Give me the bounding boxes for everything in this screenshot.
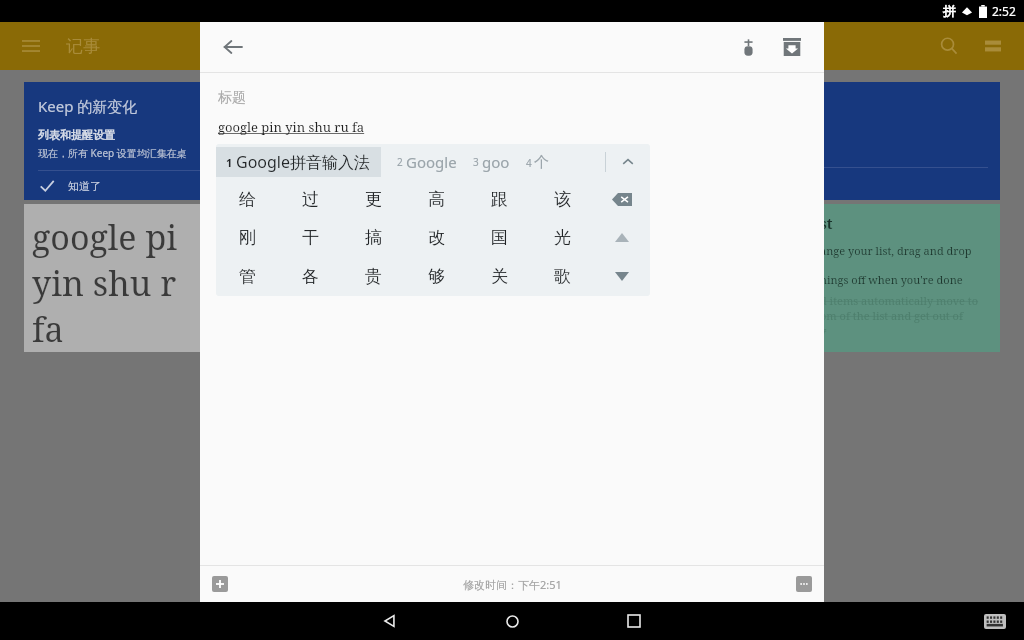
- staticText: 4: [526, 156, 532, 170]
- staticText: 高: [428, 189, 445, 210]
- button[interactable]: 干: [279, 218, 342, 257]
- staticText: 拼: [943, 3, 956, 19]
- button[interactable]: Collapse candidates: [606, 144, 650, 180]
- button[interactable]: 给: [216, 180, 279, 218]
- button[interactable]: 关: [468, 257, 531, 296]
- button[interactable]: [820, 82, 1000, 200]
- staticText: 国: [491, 227, 508, 248]
- button[interactable]: 各: [279, 257, 342, 296]
- button[interactable]: Toggle view: [976, 29, 1010, 63]
- button[interactable]: 歌: [531, 257, 594, 296]
- button[interactable]: 知道了: [24, 171, 224, 200]
- staticText: google pin yin shu ru fa: [218, 118, 365, 136]
- button[interactable]: 高: [405, 180, 468, 218]
- button[interactable]: Back: [214, 28, 252, 66]
- staticText: 知道了: [68, 179, 101, 193]
- staticText: 列表和提醒设置: [38, 128, 115, 142]
- staticText: 现在，所有 Keep 设置均汇集在桌: [38, 146, 187, 160]
- staticText: 够: [428, 266, 445, 287]
- staticText: 干: [302, 227, 319, 248]
- staticText: 光: [554, 227, 571, 248]
- staticText: goo: [482, 152, 510, 172]
- button[interactable]: 贵: [342, 257, 405, 296]
- staticText: 3: [473, 155, 479, 169]
- staticText: yin shu r: [32, 260, 177, 306]
- staticText: y: [820, 323, 827, 338]
- button[interactable]: Menu: [18, 33, 44, 59]
- staticText: 记事: [66, 36, 100, 57]
- staticText: hings off when you're done: [820, 272, 963, 287]
- button[interactable]: Add: [212, 576, 228, 592]
- staticText: 给: [239, 189, 256, 210]
- button[interactable]: 刚: [216, 218, 279, 257]
- staticText: 修改时间：下午2:51: [463, 577, 562, 592]
- button[interactable]: 2: [397, 152, 457, 172]
- staticText: 管: [239, 266, 256, 287]
- button[interactable]: google pi: [24, 204, 224, 352]
- button[interactable]: st: [820, 204, 1000, 352]
- staticText: Google拼音输入法: [236, 151, 371, 173]
- staticText: ange your list, drag and drop: [820, 243, 972, 258]
- button[interactable]: 管: [216, 257, 279, 296]
- staticText: 刚: [239, 227, 256, 248]
- button[interactable]: Switch keyboard: [984, 614, 1006, 629]
- staticText: 各: [302, 266, 319, 287]
- staticText: 关: [491, 266, 508, 287]
- staticText: Keep 的新变化: [38, 96, 138, 116]
- staticText: 跟: [491, 189, 508, 210]
- staticText: Google: [406, 152, 457, 172]
- button[interactable]: Pin: [728, 27, 768, 67]
- staticText: google pi: [32, 214, 178, 260]
- button[interactable]: More options: [796, 576, 812, 592]
- button[interactable]: 3: [473, 152, 510, 172]
- button[interactable]: Home: [490, 602, 534, 640]
- button[interactable]: Archive: [772, 27, 812, 67]
- button[interactable]: Keep 的新变化: [24, 82, 224, 200]
- button[interactable]: 够: [405, 257, 468, 296]
- staticText: 过: [302, 189, 319, 210]
- staticText: 1: [226, 155, 233, 170]
- button[interactable]: 搞: [342, 218, 405, 257]
- button[interactable]: 1: [226, 147, 371, 177]
- button[interactable]: 改: [405, 218, 468, 257]
- staticText: fa: [32, 306, 64, 352]
- button[interactable]: 光: [531, 218, 594, 257]
- staticText: 贵: [365, 266, 382, 287]
- staticText: 更: [365, 189, 382, 210]
- staticText: 2:52: [992, 3, 1016, 19]
- staticText: 改: [428, 227, 445, 248]
- staticText: 该: [554, 189, 571, 210]
- button[interactable]: 国: [468, 218, 531, 257]
- button[interactable]: Delete: [594, 180, 650, 218]
- staticText: 歌: [554, 266, 571, 287]
- button[interactable]: Next page: [594, 257, 650, 296]
- button[interactable]: 更: [342, 180, 405, 218]
- button[interactable]: 该: [531, 180, 594, 218]
- staticText: 搞: [365, 227, 382, 248]
- button[interactable]: Previous page: [594, 218, 650, 257]
- staticText: om of the list and get out of: [820, 308, 963, 323]
- staticText: d items automatically move to: [820, 293, 979, 308]
- staticText: 2: [397, 155, 403, 169]
- staticText: st: [820, 214, 833, 233]
- button[interactable]: Back: [368, 602, 412, 640]
- button[interactable]: 4: [526, 153, 549, 172]
- staticText: 个: [534, 153, 549, 172]
- button[interactable]: 跟: [468, 180, 531, 218]
- button[interactable]: 过: [279, 180, 342, 218]
- button[interactable]: Recents: [612, 602, 656, 640]
- button[interactable]: Search: [932, 29, 966, 63]
- staticText: 标题: [218, 89, 246, 107]
